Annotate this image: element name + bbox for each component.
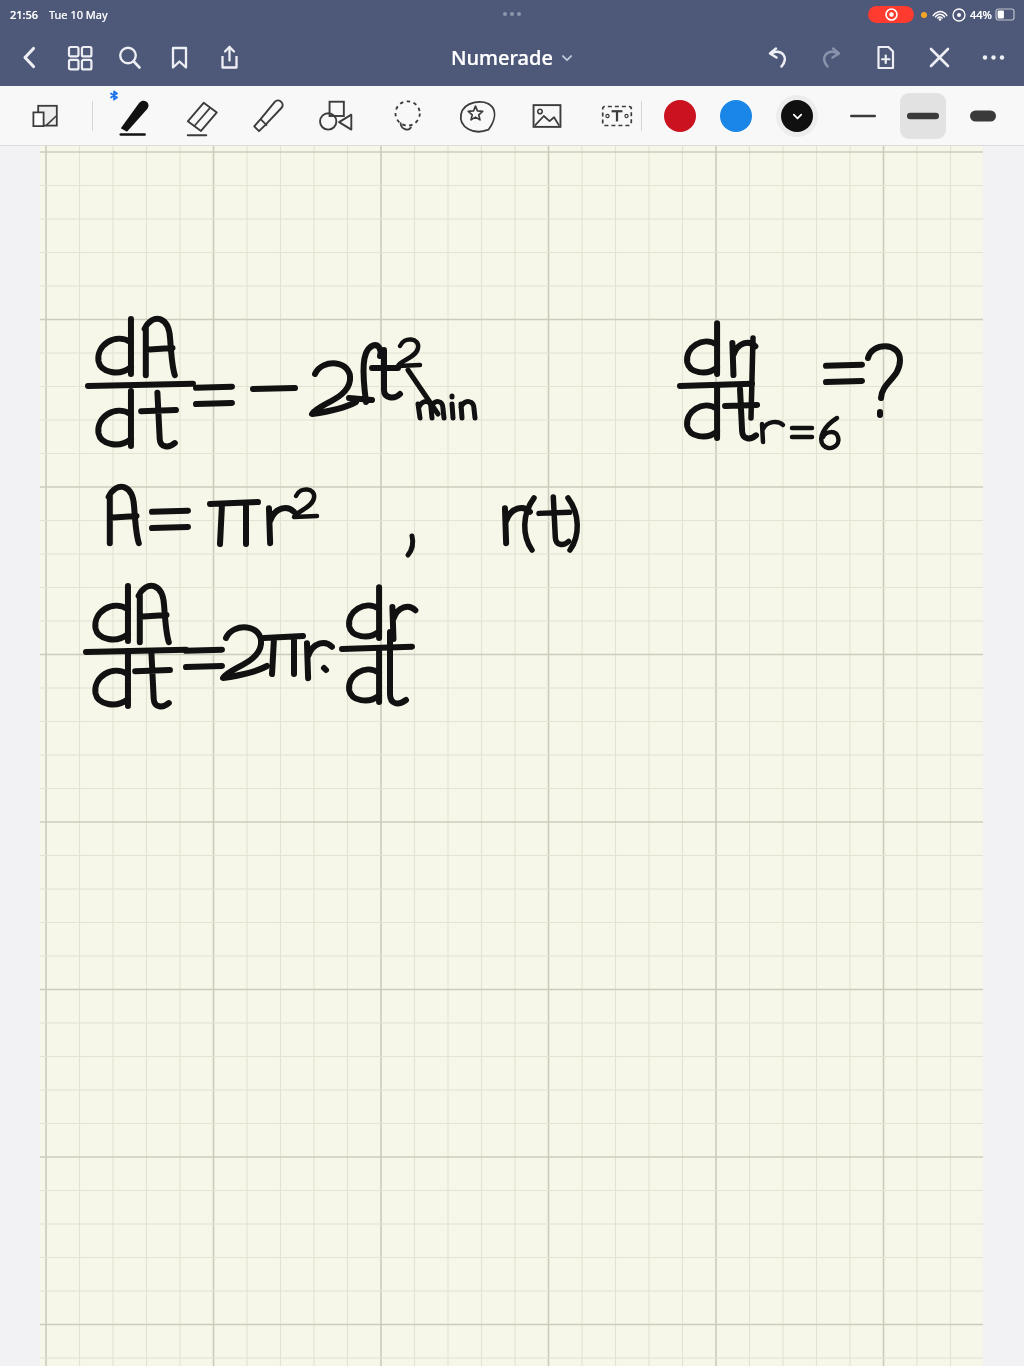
button[interactable]: Undo <box>760 40 794 74</box>
button[interactable]: Stroke width <box>900 93 946 139</box>
button[interactable]: Text <box>593 92 641 140</box>
staticText: 21:56 <box>10 7 39 22</box>
staticText: Numerade <box>451 44 553 71</box>
button[interactable]: Add page <box>868 40 902 74</box>
button[interactable]: Back <box>12 40 46 74</box>
button[interactable]: Stroke width <box>840 93 886 139</box>
button[interactable]: Red colour <box>664 100 696 132</box>
staticText: 44% <box>970 7 992 22</box>
button[interactable]: Close <box>922 40 956 74</box>
button[interactable]: Numerade <box>451 44 573 71</box>
button[interactable]: Pages <box>62 40 96 74</box>
staticText: Tue 10 May <box>49 7 108 22</box>
button[interactable]: Redo <box>814 40 848 74</box>
button[interactable]: Stroke width <box>960 93 1006 139</box>
button[interactable]: Blue colour <box>720 100 752 132</box>
button[interactable]: Eraser <box>177 92 225 140</box>
button[interactable]: Black colour selected <box>776 95 818 137</box>
button[interactable]: Eyedropper <box>663 92 711 140</box>
button[interactable]: Lasso <box>383 92 431 140</box>
button[interactable]: Pen <box>109 91 159 141</box>
button[interactable]: More <box>976 40 1010 74</box>
button[interactable]: Highlighter <box>243 92 291 140</box>
button[interactable]: Page view <box>22 92 70 140</box>
button[interactable]: Bookmark <box>162 40 196 74</box>
button[interactable]: Sticker <box>453 92 501 140</box>
button[interactable]: Shapes <box>311 92 359 140</box>
button[interactable]: Search <box>112 40 146 74</box>
button[interactable]: Share <box>212 40 246 74</box>
button[interactable]: Image <box>523 92 571 140</box>
